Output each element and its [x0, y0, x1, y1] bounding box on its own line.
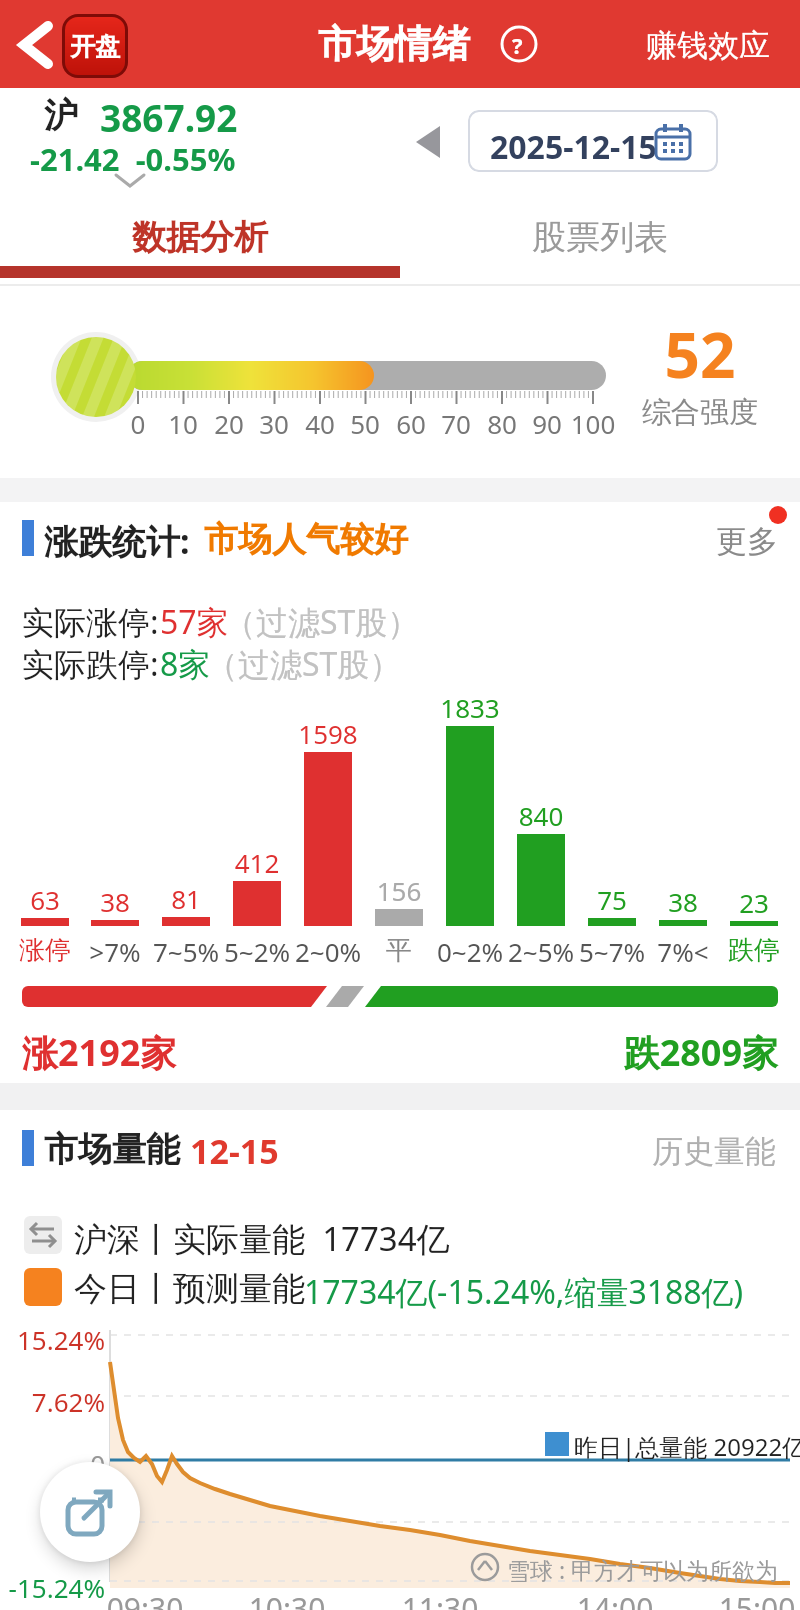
staticText: >7%: [65, 934, 165, 969]
staticText: 40: [290, 406, 350, 441]
staticText: 1598: [278, 716, 378, 751]
staticText: 综合强度: [620, 394, 780, 431]
button[interactable]: [40, 1462, 140, 1562]
staticText: 0: [108, 406, 168, 441]
staticText: 12-15: [190, 1128, 279, 1174]
staticText: 156: [349, 873, 449, 908]
staticText: 100: [563, 406, 623, 441]
staticText: 0: [0, 1446, 105, 1481]
staticText: 20: [199, 406, 259, 441]
button[interactable]: 历史量能: [640, 1118, 790, 1173]
button[interactable]: 赚钱效应: [640, 24, 790, 64]
staticText: 数据分析: [132, 216, 268, 259]
staticText: 7%<: [633, 934, 733, 969]
staticText: 2~5%: [491, 934, 591, 969]
staticText: 0~2%: [420, 934, 520, 969]
staticText: 840: [491, 798, 591, 833]
button[interactable]: [10, 14, 62, 76]
staticText: 历史量能: [652, 1132, 776, 1171]
button[interactable]: 数据分析: [0, 202, 400, 272]
staticText: 5~7%: [562, 934, 662, 969]
staticText: 70: [426, 406, 486, 441]
staticText: 15:00: [717, 1588, 797, 1610]
staticText: 涨停: [0, 934, 95, 967]
staticText: 63: [0, 882, 95, 917]
staticText: 昨日|总量能 20922亿: [574, 1430, 800, 1463]
staticText: 412: [207, 845, 307, 880]
staticText: 23: [704, 885, 800, 920]
staticText: 11:30: [400, 1588, 480, 1610]
staticText: （过滤ST股）: [224, 600, 420, 644]
staticText: 90: [517, 406, 577, 441]
staticText: 30: [244, 406, 304, 441]
staticText: 7.62%: [0, 1384, 105, 1419]
staticText: 股票列表: [532, 216, 668, 259]
staticText: 涨跌统计:: [44, 518, 190, 564]
staticText: 3867.92: [100, 92, 238, 142]
staticText: 雪球 : 甲方才可以为所欲为: [507, 1554, 779, 1585]
staticText: 5~2%: [207, 934, 307, 969]
staticText: 75: [562, 882, 662, 917]
staticText: 开盘: [70, 31, 120, 62]
staticText: 市场人气较好: [204, 518, 408, 561]
button[interactable]: 更多: [700, 505, 795, 560]
button[interactable]: 2025-12-15: [468, 110, 718, 172]
staticText: 2025-12-15: [490, 125, 657, 169]
staticText: 2~0%: [278, 934, 378, 969]
staticText: 平: [349, 934, 449, 967]
staticText: 80: [472, 406, 532, 441]
button[interactable]: ?: [501, 24, 541, 64]
staticText: -21.42 -0.55%: [30, 138, 236, 180]
staticText: 10: [153, 406, 213, 441]
button[interactable]: 开盘: [62, 14, 128, 78]
staticText: 8家: [160, 642, 211, 686]
staticText: 7~5%: [136, 934, 236, 969]
staticText: （过滤ST股）: [206, 642, 402, 686]
staticText: 60: [381, 406, 441, 441]
staticText: 涨2192家: [22, 1028, 177, 1077]
staticText: 市场量能: [44, 1128, 180, 1171]
staticText: -15.24%: [0, 1570, 105, 1605]
staticText: 沪: [44, 94, 78, 137]
staticText: 38: [633, 884, 733, 919]
staticText: 实际涨停:: [22, 600, 159, 644]
staticText: 跌停: [704, 934, 800, 967]
staticText: 17734亿(-15.24%,缩量3188亿): [304, 1270, 744, 1314]
staticText: 1833: [420, 690, 520, 725]
staticText: 跌2809家: [478, 1028, 778, 1077]
staticText: 更多: [716, 522, 778, 561]
staticText: 09:30: [105, 1588, 185, 1610]
staticText: 81: [136, 881, 236, 916]
staticText: 50: [335, 406, 395, 441]
button[interactable]: 股票列表: [400, 202, 800, 272]
staticText: 沪深丨实际量能 17734亿: [74, 1216, 450, 1261]
staticText: 38: [65, 884, 165, 919]
staticText: 57家: [160, 600, 229, 644]
staticText: 赚钱效应: [646, 26, 770, 65]
staticText: 52: [620, 312, 780, 396]
staticText: 14:00: [575, 1588, 655, 1610]
staticText: 10:30: [247, 1588, 327, 1610]
staticText: ?: [512, 30, 523, 60]
staticText: 市场情绪: [318, 20, 470, 68]
staticText: 15.24%: [0, 1322, 105, 1357]
staticText: 实际跌停:: [22, 642, 159, 686]
staticText: 今日丨预测量能: [74, 1268, 305, 1310]
